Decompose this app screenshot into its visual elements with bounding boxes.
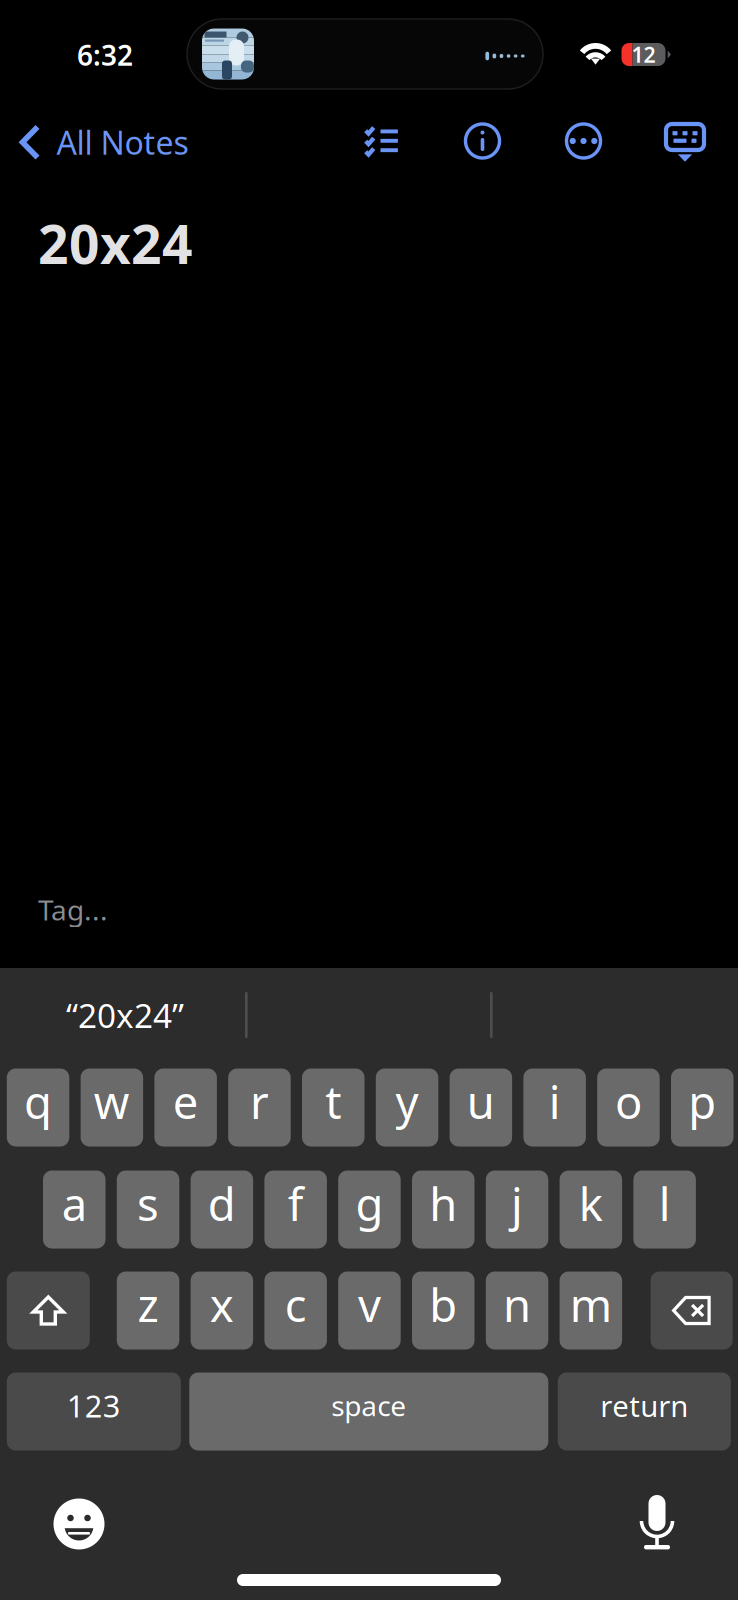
staticText: e bbox=[173, 1071, 199, 1132]
staticText: r bbox=[250, 1071, 269, 1132]
staticText: v bbox=[358, 1274, 381, 1335]
staticText: 6:32 bbox=[77, 36, 133, 74]
button[interactable]: Emoji bbox=[44, 1489, 114, 1559]
button[interactable]: y bbox=[376, 1068, 438, 1146]
staticText: b bbox=[429, 1274, 457, 1335]
staticText: l bbox=[659, 1173, 671, 1234]
staticText: “20x24” bbox=[66, 993, 184, 1037]
button[interactable]: e bbox=[154, 1068, 217, 1146]
staticText: space bbox=[331, 1387, 406, 1424]
staticText: m bbox=[570, 1274, 612, 1335]
staticText: f bbox=[288, 1173, 304, 1234]
button[interactable]: Shift bbox=[7, 1271, 90, 1349]
staticText: c bbox=[285, 1274, 307, 1335]
button[interactable]: space bbox=[189, 1372, 548, 1450]
staticText: h bbox=[429, 1173, 457, 1234]
staticText: x bbox=[210, 1274, 234, 1335]
button[interactable]: o bbox=[597, 1068, 660, 1146]
staticText: q bbox=[24, 1071, 52, 1132]
staticText: p bbox=[688, 1071, 716, 1132]
button[interactable]: c bbox=[264, 1271, 327, 1349]
staticText: t bbox=[325, 1071, 341, 1132]
button[interactable]: u bbox=[450, 1068, 512, 1146]
staticText: g bbox=[355, 1173, 383, 1234]
staticText: Tag... bbox=[38, 891, 108, 928]
button[interactable]: More bbox=[555, 113, 611, 169]
button[interactable]: 123 bbox=[7, 1372, 181, 1450]
button[interactable]: z bbox=[117, 1271, 179, 1349]
button[interactable]: w bbox=[81, 1068, 143, 1146]
button[interactable]: Info bbox=[454, 113, 510, 169]
staticText: i bbox=[549, 1071, 561, 1132]
staticText: z bbox=[138, 1274, 159, 1335]
staticText: y bbox=[396, 1071, 419, 1132]
button[interactable]: x bbox=[191, 1271, 253, 1349]
button[interactable]: k bbox=[560, 1170, 622, 1248]
button[interactable]: m bbox=[560, 1271, 622, 1349]
button[interactable]: b bbox=[412, 1271, 474, 1349]
staticText: u bbox=[467, 1071, 495, 1132]
staticText: a bbox=[62, 1173, 87, 1234]
button[interactable]: q bbox=[7, 1068, 69, 1146]
staticText: o bbox=[615, 1071, 642, 1132]
button[interactable]: h bbox=[412, 1170, 474, 1248]
button[interactable]: v bbox=[338, 1271, 401, 1349]
button[interactable]: All Notes bbox=[19, 110, 188, 174]
staticText: k bbox=[579, 1173, 603, 1234]
staticText: s bbox=[137, 1173, 159, 1234]
button[interactable]: l bbox=[633, 1170, 696, 1248]
button[interactable]: r bbox=[228, 1068, 291, 1146]
button[interactable]: return bbox=[558, 1372, 731, 1450]
staticText: 12 bbox=[631, 40, 655, 69]
button[interactable]: Checklist bbox=[353, 113, 409, 169]
button[interactable]: Dictate bbox=[622, 1479, 692, 1549]
button[interactable]: n bbox=[486, 1271, 548, 1349]
staticText: All Notes bbox=[56, 121, 188, 163]
staticText: 20x24 bbox=[38, 208, 193, 279]
staticText: return bbox=[600, 1386, 688, 1425]
button[interactable]: i bbox=[523, 1068, 586, 1146]
button[interactable]: g bbox=[338, 1170, 401, 1248]
button[interactable]: Hide Keyboard bbox=[657, 109, 713, 165]
button[interactable]: a bbox=[43, 1170, 105, 1248]
staticText: 123 bbox=[67, 1385, 121, 1426]
staticText: d bbox=[208, 1173, 236, 1234]
button[interactable]: Backspace bbox=[651, 1271, 733, 1349]
button[interactable]: p bbox=[671, 1068, 733, 1146]
button[interactable]: t bbox=[302, 1068, 364, 1146]
staticText: w bbox=[94, 1071, 130, 1132]
button[interactable]: d bbox=[191, 1170, 253, 1248]
staticText: j bbox=[511, 1173, 523, 1234]
button[interactable]: j bbox=[486, 1170, 548, 1248]
button[interactable]: f bbox=[264, 1170, 327, 1248]
button[interactable]: s bbox=[117, 1170, 179, 1248]
staticText: n bbox=[503, 1274, 531, 1335]
